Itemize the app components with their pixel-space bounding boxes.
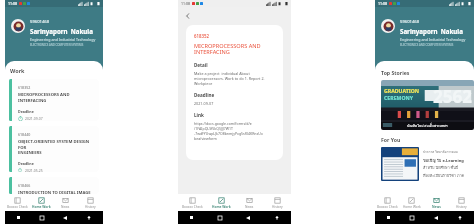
staticText: Sarinyaporn Nakula <box>30 27 93 35</box>
staticText: Deadline <box>194 92 215 98</box>
button[interactable]: History <box>449 194 474 211</box>
button[interactable]: History <box>263 194 291 211</box>
staticText: GRADUATION <box>384 87 419 94</box>
staticText: Sarinyaporn Nakula <box>400 27 463 35</box>
staticText: Booxxx Check <box>377 205 398 209</box>
staticText: For You <box>381 136 401 143</box>
staticText: ขอเชิญ รับ e-Learning <box>423 157 464 163</box>
staticText: Deadline <box>18 161 34 166</box>
staticText: Engineering and Industrial Technology <box>30 37 96 42</box>
button[interactable]: Booxxx Check <box>5 194 29 211</box>
button[interactable]: News <box>53 194 78 211</box>
button[interactable]: Home Work <box>399 194 424 211</box>
staticText: Engineering and Industrial Technology <box>400 37 466 42</box>
staticText: 618352 <box>18 85 31 90</box>
staticText: Top Stories <box>381 69 410 76</box>
button[interactable]: Booxxx Check <box>178 194 207 211</box>
staticText: INTRODUCTION TO DIGITAL IMAGE PROCESSING <box>18 190 91 194</box>
staticText: OBJECT-ORIENTED SYSTEM DESIGN FOR ENGINE… <box>18 139 95 155</box>
staticText: History <box>272 205 283 209</box>
staticText: Home Work <box>403 205 421 209</box>
staticText: 59601468 <box>30 19 50 25</box>
staticText: History <box>456 205 467 209</box>
staticText: Home Work <box>212 205 231 209</box>
staticText: Booxxx Check <box>7 205 28 209</box>
staticText: 11:08 <box>378 1 387 6</box>
button[interactable]: 618440 <box>9 126 99 172</box>
staticText: MICROPROCESSORS AND INTERFACING <box>18 92 95 103</box>
button[interactable]: News <box>424 194 449 211</box>
staticText: ประกาศ วิทยาลัยการคอม <box>423 149 458 154</box>
staticText: News <box>432 205 441 209</box>
staticText: CEREMONY <box>384 94 414 101</box>
button[interactable]: 618466 <box>9 177 99 194</box>
staticText: Detail <box>194 62 208 68</box>
button[interactable]: History <box>78 194 103 211</box>
staticText: 2021-05-25 <box>25 168 43 172</box>
button[interactable]: For You article <box>381 147 472 181</box>
button[interactable]: Back <box>183 11 193 21</box>
button[interactable]: News <box>235 194 263 211</box>
staticText: News <box>245 205 254 209</box>
button[interactable]: 618352 <box>9 79 99 121</box>
staticText: ELECTRONICS AND COMPUTER SYSTEMS <box>30 43 84 47</box>
staticText: Make a project individual About micropro… <box>194 71 265 86</box>
staticText: 59601468 <box>400 19 420 25</box>
staticText: News <box>61 205 70 209</box>
staticText: Home Work <box>32 205 51 209</box>
button[interactable]: Graduation ceremony story <box>381 80 474 130</box>
staticText: 2021-09-07 <box>194 101 214 106</box>
staticText: 2021-09-07 <box>25 116 43 121</box>
staticText: Link <box>194 112 204 118</box>
staticText: 618352 <box>194 33 210 39</box>
staticText: Work <box>10 67 25 74</box>
staticText: 2562 <box>433 85 472 108</box>
staticText: History <box>85 205 96 209</box>
button[interactable]: Home Work <box>207 194 235 211</box>
staticText: Deadline <box>18 109 34 114</box>
staticText: Booxxx Check <box>182 205 203 209</box>
staticText: 618466 <box>18 183 31 188</box>
staticText: 11:08 <box>181 1 190 6</box>
button[interactable]: Booxxx Check <box>375 194 399 211</box>
staticText: 11:08 <box>8 1 17 6</box>
button[interactable]: Home Work <box>29 194 53 211</box>
button[interactable]: 618352 <box>186 25 283 160</box>
staticText: 618440 <box>18 132 31 137</box>
staticText: บัณฑิตใหม่ สมเด็จพระเทพฯ <box>407 123 448 128</box>
button[interactable]: https://docs.google.com/forms/d/e /1FAIp… <box>194 121 263 141</box>
staticText: สำหรับ นักศึกษา ชั้นปี <box>423 165 459 171</box>
staticText: ELECTRONICS AND COMPUTER SYSTEMS <box>400 43 454 47</box>
staticText: ที่ลงทะเบียนรายวิชา ภาค <box>423 173 465 179</box>
staticText: MICROPROCESSORS AND INTERFACING <box>194 42 261 56</box>
